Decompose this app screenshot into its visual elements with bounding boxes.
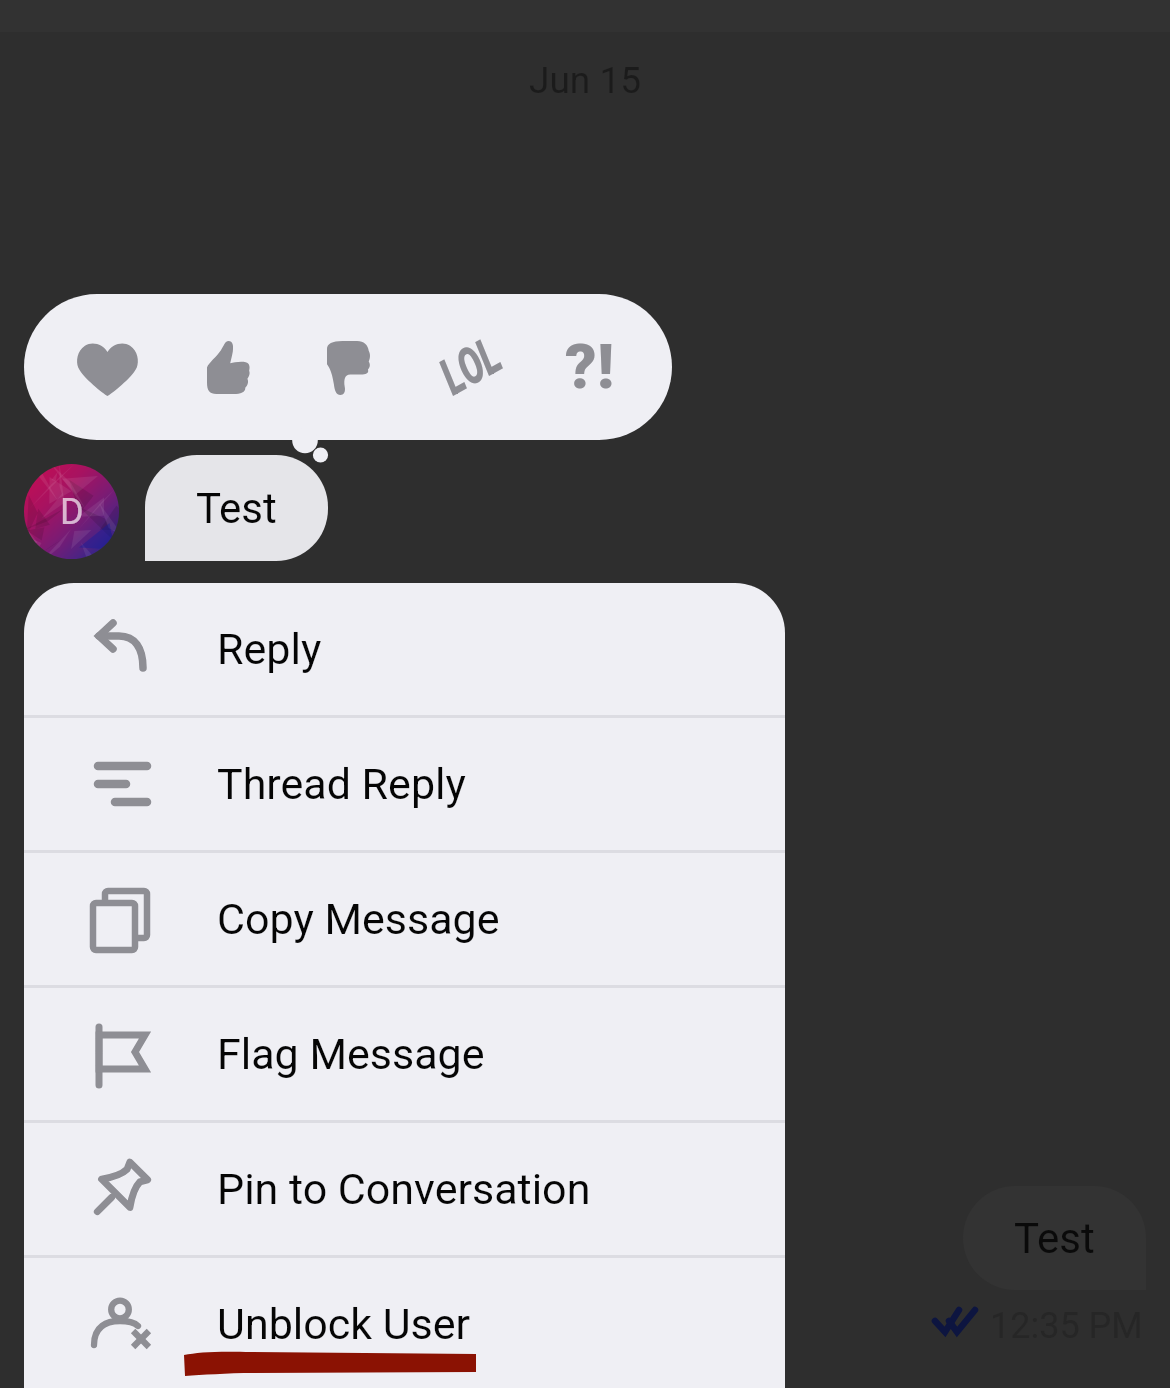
button[interactable]: Reply: [24, 583, 785, 715]
button[interactable]: Test: [963, 1186, 1146, 1290]
button[interactable]: Unblock User: [24, 1258, 785, 1388]
button[interactable]: Wow reaction: [556, 332, 622, 400]
other: Message read: [932, 1306, 978, 1338]
button[interactable]: Love reaction: [77, 343, 138, 396]
staticText: Thread Reply: [217, 759, 466, 809]
staticText: Reply: [217, 624, 322, 674]
button[interactable]: Pin to Conversation: [24, 1123, 785, 1255]
staticText: Flag Message: [217, 1029, 485, 1079]
button[interactable]: LOL reaction: [434, 332, 506, 400]
button[interactable]: Test: [145, 455, 328, 561]
staticText: D: [60, 491, 84, 533]
button[interactable]: Copy Message: [24, 853, 785, 985]
staticText: Test: [1014, 1214, 1095, 1263]
button[interactable]: Thumbs up reaction: [207, 341, 250, 394]
staticText: Test: [196, 484, 277, 533]
staticText: Pin to Conversation: [217, 1164, 591, 1214]
button[interactable]: Flag Message: [24, 988, 785, 1120]
button[interactable]: Thread Reply: [24, 718, 785, 850]
staticText: Unblock User: [217, 1299, 471, 1349]
staticText: Copy Message: [217, 894, 500, 944]
button[interactable]: Open profile of D: [24, 464, 119, 559]
button[interactable]: Thumbs down reaction: [327, 341, 370, 395]
